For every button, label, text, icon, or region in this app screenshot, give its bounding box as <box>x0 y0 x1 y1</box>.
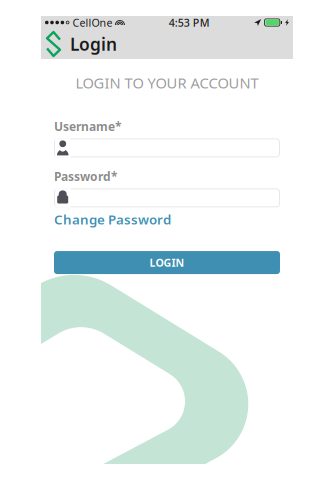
staticText: LOGIN TO YOUR ACCOUNT <box>75 73 258 92</box>
button[interactable]: LOGIN <box>54 251 280 274</box>
staticText: CellOne <box>72 15 112 30</box>
staticText: Change Password <box>54 210 171 228</box>
staticText: LOGIN <box>149 255 184 270</box>
staticText: Login <box>70 32 117 55</box>
button[interactable]: Change Password <box>54 210 171 228</box>
staticText: 4:53 PM <box>169 15 210 30</box>
staticText: Password* <box>54 168 118 184</box>
staticText: Username* <box>54 118 122 134</box>
